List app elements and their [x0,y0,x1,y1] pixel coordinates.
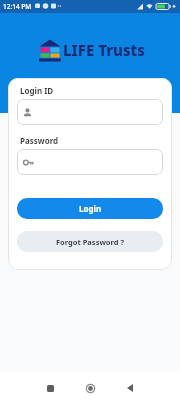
staticText: 12:14 PM [3,2,32,11]
button[interactable]: Login [17,198,163,219]
button[interactable] [17,99,163,125]
button[interactable]: Forgot Password ? [17,231,163,252]
staticText: Forgot Password ? [56,237,124,247]
staticText: Login [79,203,102,214]
button[interactable] [30,372,70,400]
button[interactable] [70,372,110,400]
button[interactable] [110,372,150,400]
staticText: Login ID [20,85,54,96]
staticText: Password [20,135,59,146]
button[interactable] [17,149,163,175]
staticText: LIFE Trusts [63,40,145,60]
